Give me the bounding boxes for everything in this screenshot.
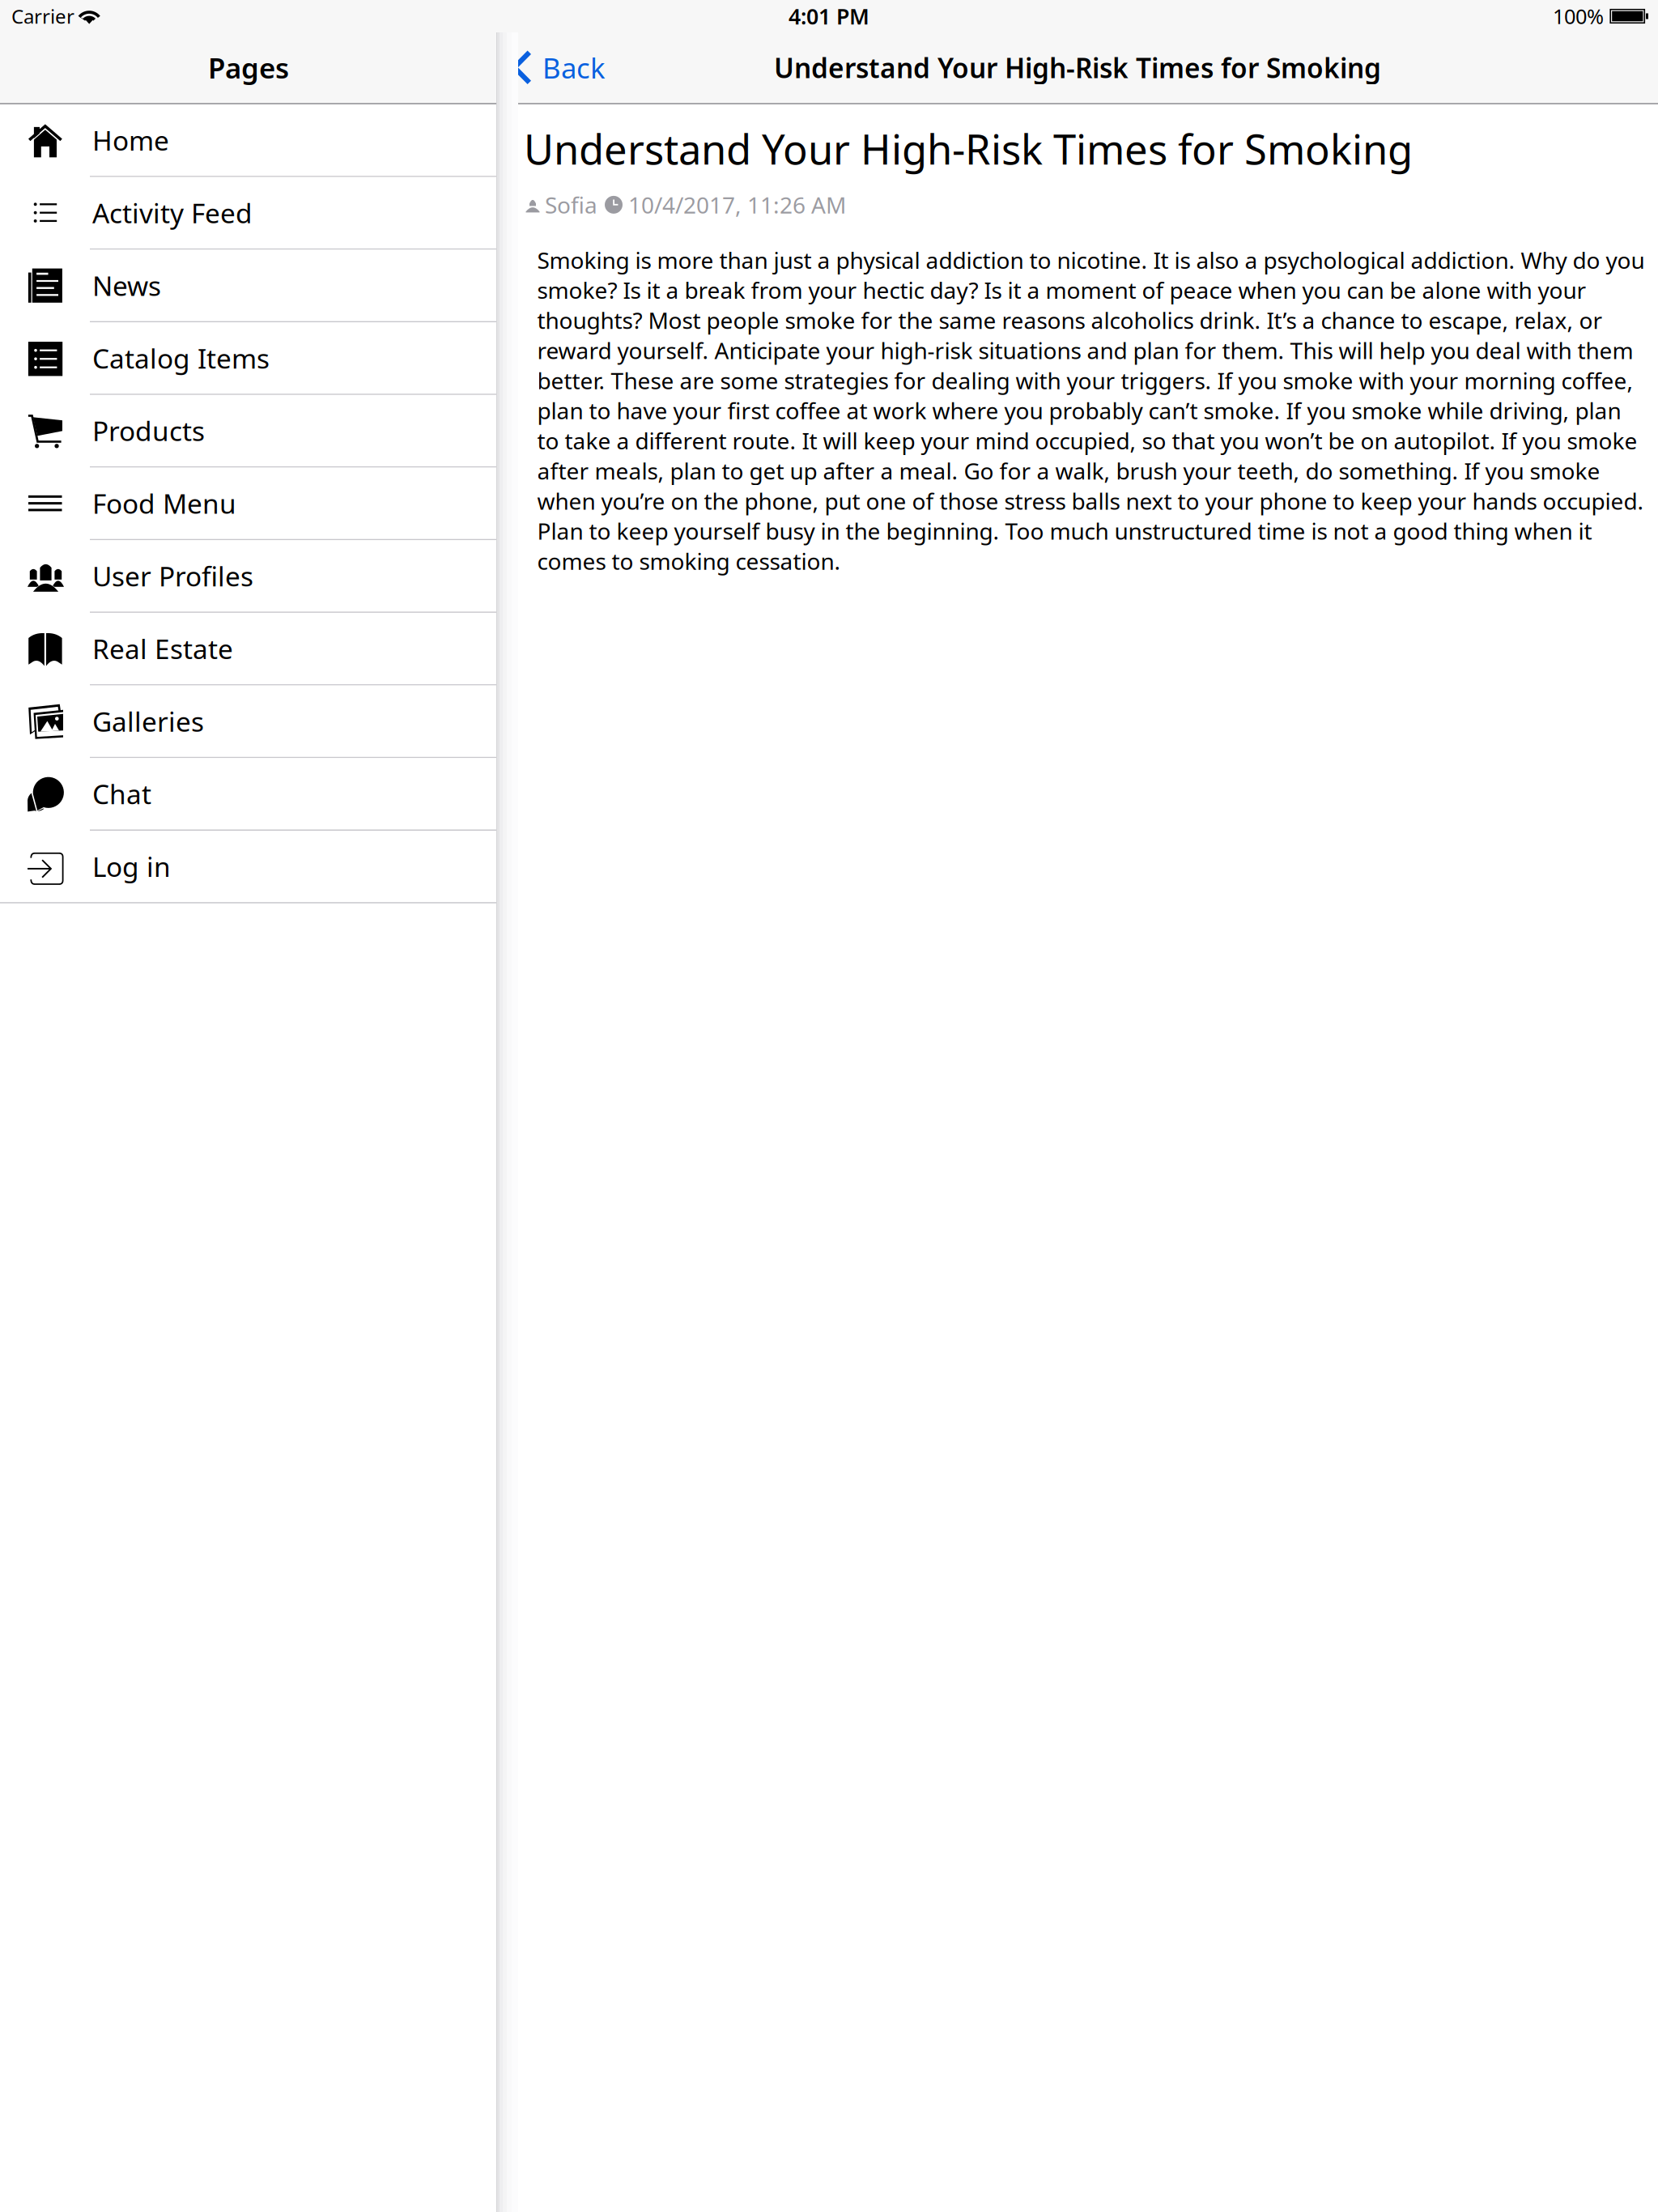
button[interactable]: Galleries — [0, 685, 497, 758]
staticText: User Profiles — [92, 558, 253, 594]
button[interactable]: Catalog Items — [0, 322, 497, 395]
staticText: 100% — [1553, 3, 1604, 30]
staticText: Smoking is more than just a physical add… — [537, 245, 1645, 576]
button[interactable]: User Profiles — [0, 540, 497, 613]
button[interactable]: Activity Feed — [0, 177, 497, 250]
staticText: Galleries — [92, 703, 204, 739]
staticText: Food Menu — [92, 485, 236, 521]
staticText: Chat — [92, 776, 151, 812]
staticText: 10/4/2017, 11:26 AM — [628, 190, 846, 220]
button[interactable]: Log in — [0, 831, 497, 903]
button[interactable]: Chat — [0, 758, 497, 831]
staticText: 4:01 PM — [789, 2, 869, 31]
staticText: Activity Feed — [92, 195, 253, 231]
button[interactable]: News — [0, 250, 497, 322]
button[interactable]: Home — [0, 104, 497, 177]
staticText: Home — [92, 122, 169, 158]
staticText: Understand Your High-Risk Times for Smok… — [774, 50, 1381, 86]
button[interactable]: Real Estate — [0, 613, 497, 685]
staticText: Log in — [92, 849, 171, 884]
staticText: Real Estate — [92, 631, 233, 667]
staticText: News — [92, 268, 161, 303]
staticText: Sofia — [545, 190, 597, 220]
button[interactable]: Products — [0, 395, 497, 468]
button[interactable]: Back — [497, 32, 617, 103]
button[interactable]: Food Menu — [0, 468, 497, 540]
staticText: Catalog Items — [92, 340, 270, 376]
staticText: Pages — [208, 49, 289, 86]
staticText: Carrier — [11, 3, 74, 29]
staticText: Understand Your High-Risk Times for Smok… — [524, 121, 1413, 176]
staticText: Products — [92, 413, 205, 449]
staticText: Back — [542, 49, 606, 86]
